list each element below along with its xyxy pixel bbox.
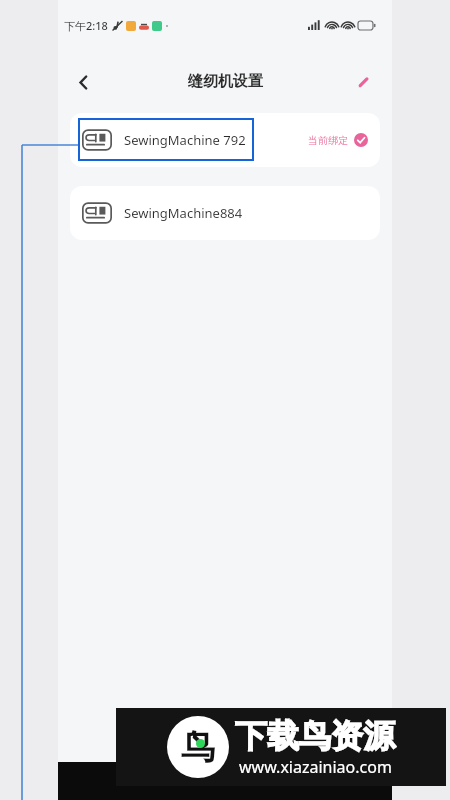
button[interactable]: Edit [350,69,376,95]
staticText: SewingMachine 792 [124,131,246,149]
button[interactable]: Back [68,67,98,97]
staticText: www.xiazainiao.com [239,756,392,778]
staticText: 鸟 [181,726,215,769]
staticText: 下午2:18 [64,18,108,33]
button[interactable]: SewingMachine 792 [70,113,380,167]
staticText: 当前绑定 [308,134,348,147]
button[interactable]: SewingMachine884 [70,186,380,240]
staticText: 下载鸟资源 [235,716,395,756]
staticText: SewingMachine884 [124,204,243,222]
staticText: 缝纫机设置 [188,72,263,91]
